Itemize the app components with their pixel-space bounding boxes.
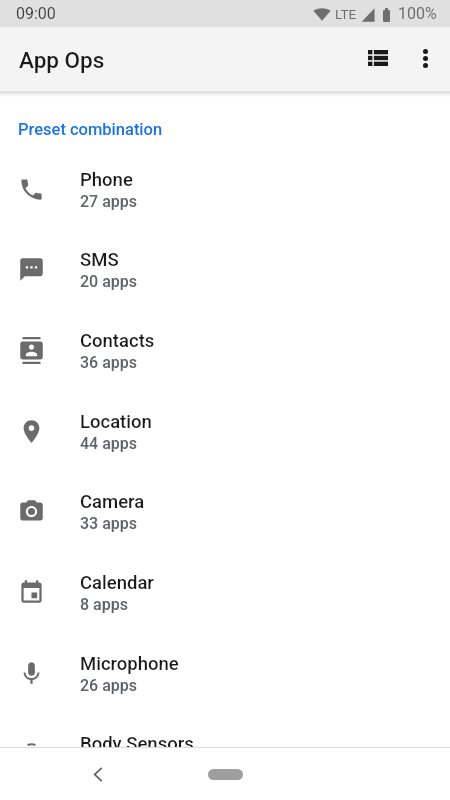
- staticText: 33 apps: [80, 514, 138, 533]
- button[interactable]: Microphone: [0, 633, 450, 714]
- staticText: Preset combination: [18, 120, 163, 139]
- button[interactable]: More options: [401, 35, 449, 83]
- staticText: 36 apps: [80, 353, 138, 372]
- staticText: 3 apps: [80, 756, 128, 775]
- staticText: Microphone: [80, 653, 179, 675]
- staticText: Contacts: [80, 330, 155, 352]
- staticText: Camera: [80, 491, 145, 513]
- staticText: 8 apps: [80, 595, 128, 614]
- button[interactable]: Home: [208, 769, 243, 780]
- staticText: LTE: [335, 6, 357, 22]
- staticText: Calendar: [80, 572, 154, 594]
- button[interactable]: Phone: [0, 149, 450, 230]
- button[interactable]: SMS: [0, 229, 450, 310]
- button[interactable]: Location: [0, 391, 450, 472]
- staticText: 27 apps: [80, 192, 138, 211]
- staticText: App Ops: [19, 47, 105, 73]
- staticText: SMS: [80, 249, 119, 271]
- staticText: Location: [80, 411, 152, 433]
- staticText: 20 apps: [80, 272, 138, 291]
- staticText: 44 apps: [80, 434, 138, 453]
- button[interactable]: Body Sensors: [0, 713, 450, 794]
- button[interactable]: Back: [78, 754, 118, 794]
- button[interactable]: Preset combination: [0, 91, 450, 149]
- button[interactable]: Camera: [0, 471, 450, 552]
- button[interactable]: Contacts: [0, 310, 450, 391]
- staticText: Body Sensors: [80, 733, 194, 755]
- staticText: 100%: [398, 4, 437, 23]
- staticText: 26 apps: [80, 676, 138, 695]
- button[interactable]: Switch list view: [354, 35, 402, 83]
- button[interactable]: Calendar: [0, 552, 450, 633]
- staticText: Phone: [80, 169, 133, 191]
- staticText: 09:00: [16, 4, 56, 23]
